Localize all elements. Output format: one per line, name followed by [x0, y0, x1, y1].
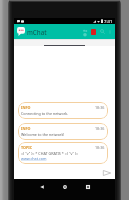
button[interactable]: Open navigation drawer — [17, 27, 25, 36]
button[interactable]: Search — [100, 29, 105, 34]
button[interactable]: Home — [63, 185, 67, 189]
staticText: TOPIC — [21, 145, 33, 150]
staticText: 7:31 — [104, 18, 113, 24]
button[interactable]: Users — [82, 29, 88, 35]
staticText: mChat — [27, 28, 47, 36]
staticText: Welcome to the network! — [21, 132, 65, 137]
staticText: 18:36 — [95, 105, 105, 110]
button[interactable]: Back — [40, 185, 44, 189]
staticText: Connecting to the network. — [21, 111, 69, 116]
button[interactable]: More options — [108, 30, 112, 34]
staticText: INFO — [21, 105, 31, 110]
staticText: www.chat.com — [21, 156, 47, 161]
staticText: 18:36 — [95, 126, 105, 131]
staticText: =( "v" )= * CHAT GRATIS * =( "v" )= — [21, 151, 79, 156]
button[interactable]: Disconnect — [91, 29, 96, 35]
button[interactable]: Send — [103, 170, 111, 176]
staticText: INFO — [21, 126, 31, 131]
staticText: 18:36 — [95, 145, 105, 150]
button[interactable]: TOPIC — [18, 142, 108, 164]
button[interactable]: INFO — [18, 123, 108, 140]
button[interactable]: INFO — [18, 102, 108, 119]
button[interactable]: Recent apps — [86, 185, 90, 189]
